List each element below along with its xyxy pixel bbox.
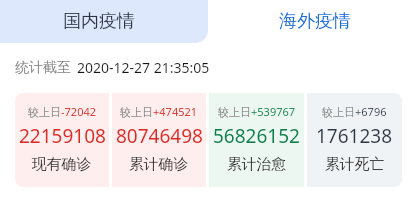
staticText: 2020-12-27 21:35:05 [77, 58, 210, 77]
staticText: 较上日 [218, 105, 251, 119]
staticText: 较上日 [322, 105, 355, 119]
staticText: 累计死亡 [325, 155, 385, 174]
staticText: +474521 [153, 104, 198, 119]
staticText: -72042 [61, 104, 97, 119]
staticText: 较上日 [28, 105, 61, 119]
staticText: 国内疫情 [63, 10, 135, 33]
staticText: 统计截至 [15, 59, 71, 77]
staticText: 累计确诊 [129, 155, 189, 174]
staticText: 现有确诊 [32, 155, 92, 174]
button[interactable]: 较上日 [15, 93, 109, 187]
staticText: 22159108 [19, 123, 106, 149]
staticText: 较上日 [120, 105, 153, 119]
staticText: 海外疫情 [279, 10, 351, 33]
staticText: 累计治愈 [227, 155, 287, 174]
button[interactable]: 较上日 [209, 93, 304, 187]
staticText: +6796 [355, 104, 387, 119]
button[interactable]: 较上日 [112, 93, 206, 187]
staticText: 80746498 [116, 123, 203, 149]
staticText: 56826152 [213, 123, 300, 149]
staticText: +539767 [251, 104, 296, 119]
staticText: 1761238 [316, 123, 393, 149]
button[interactable]: 较上日 [307, 93, 402, 187]
button[interactable]: 海外疫情 [208, 0, 417, 43]
button[interactable]: 国内疫情 [0, 0, 208, 43]
